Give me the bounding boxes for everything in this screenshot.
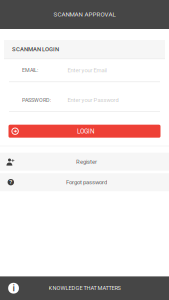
staticText: Enter your Password xyxy=(67,97,118,103)
staticText: i xyxy=(12,282,14,294)
staticText: Forgot password xyxy=(66,179,107,186)
staticText: PASSWORD: xyxy=(22,97,51,103)
button[interactable]: LOGIN xyxy=(8,125,160,138)
staticText: KNOWLEDGE THAT MATTERS xyxy=(48,285,120,291)
button[interactable]: Information xyxy=(0,282,19,294)
staticText: SCANMAN APPROVAL xyxy=(53,11,115,18)
staticText: LOGIN xyxy=(77,127,95,135)
staticText: SCANMAN LOGIN xyxy=(12,46,59,53)
button[interactable]: Register xyxy=(0,153,169,171)
staticText: Enter your Email xyxy=(67,67,106,74)
staticText: Register xyxy=(76,158,97,165)
button[interactable]: ? xyxy=(0,173,169,191)
staticText: EMAIL: xyxy=(22,67,38,73)
staticText: ? xyxy=(9,178,12,186)
